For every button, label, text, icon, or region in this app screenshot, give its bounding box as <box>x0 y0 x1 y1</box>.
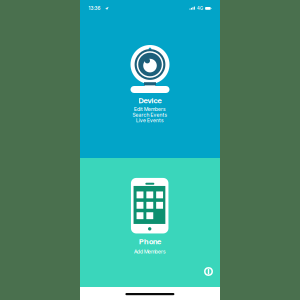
staticText: Edit Members <box>134 106 166 112</box>
staticText: Phone <box>139 237 161 246</box>
staticText: 13:36 <box>89 6 101 11</box>
staticText: Live Events <box>136 117 164 123</box>
button[interactable]: Info <box>204 267 213 276</box>
staticText: Search Events <box>132 112 167 118</box>
button[interactable]: 13:36 <box>80 0 220 158</box>
staticText: Device <box>138 96 161 105</box>
staticText: 4G <box>197 6 203 11</box>
staticText: Add Members <box>134 248 166 255</box>
button[interactable]: Phone <box>80 158 220 287</box>
